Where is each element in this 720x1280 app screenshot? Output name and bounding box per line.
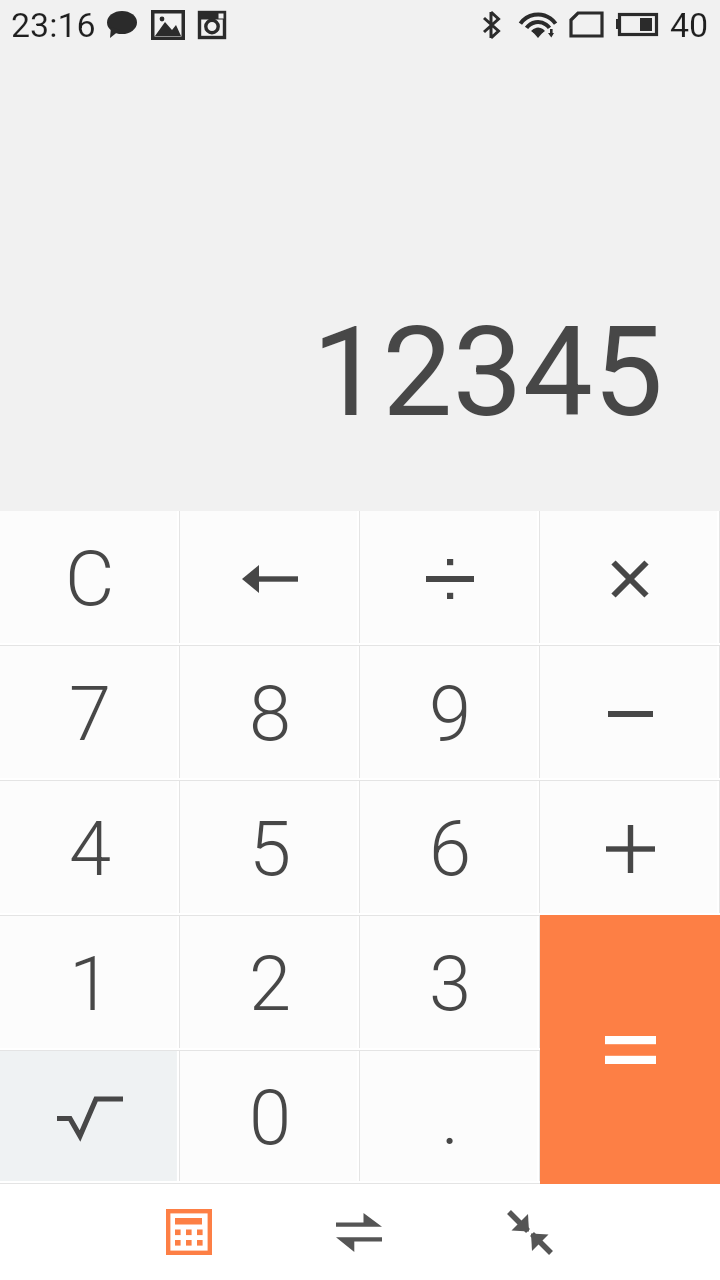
staticText: 7 bbox=[69, 669, 112, 758]
button[interactable]: Multiply bbox=[540, 511, 720, 646]
button[interactable]: 3 bbox=[360, 916, 540, 1051]
staticText: 0 bbox=[249, 1073, 292, 1162]
staticText: 40 bbox=[670, 5, 709, 45]
button[interactable]: Decimal point bbox=[360, 1051, 540, 1184]
staticText: 2 bbox=[249, 939, 292, 1028]
staticText: 8 bbox=[249, 669, 292, 758]
button[interactable]: 5 bbox=[180, 781, 360, 916]
staticText: . bbox=[441, 1073, 460, 1162]
button[interactable]: Square root bbox=[0, 1051, 180, 1184]
button[interactable]: Equals bbox=[540, 915, 720, 1184]
button[interactable]: Unit converter bbox=[311, 1184, 407, 1280]
button[interactable]: Divide bbox=[360, 511, 540, 646]
staticText: 1 bbox=[69, 939, 112, 1028]
staticText: 23:16 bbox=[11, 5, 96, 45]
staticText: 5 bbox=[249, 804, 292, 893]
button[interactable]: Clear bbox=[0, 511, 180, 646]
button[interactable]: Calculator bbox=[141, 1184, 237, 1280]
button[interactable]: Minus bbox=[540, 646, 720, 781]
staticText: 9 bbox=[429, 669, 472, 758]
other: Notifications bbox=[105, 10, 235, 40]
button[interactable]: Collapse bbox=[482, 1184, 578, 1280]
staticText: C bbox=[65, 534, 115, 623]
staticText: 4 bbox=[69, 804, 112, 893]
button[interactable]: 4 bbox=[0, 781, 180, 916]
button[interactable]: 9 bbox=[360, 646, 540, 781]
button[interactable]: 0 bbox=[180, 1051, 360, 1184]
button[interactable]: 8 bbox=[180, 646, 360, 781]
button[interactable]: Plus bbox=[540, 781, 720, 916]
staticText: 3 bbox=[429, 939, 472, 1028]
staticText: 12345 bbox=[312, 299, 664, 445]
button[interactable]: 7 bbox=[0, 646, 180, 781]
button[interactable]: 2 bbox=[180, 916, 360, 1051]
other: System status bbox=[482, 11, 662, 39]
button[interactable]: Backspace bbox=[180, 511, 360, 646]
staticText: 6 bbox=[429, 804, 472, 893]
button[interactable]: 1 bbox=[0, 916, 180, 1051]
button[interactable]: 6 bbox=[360, 781, 540, 916]
